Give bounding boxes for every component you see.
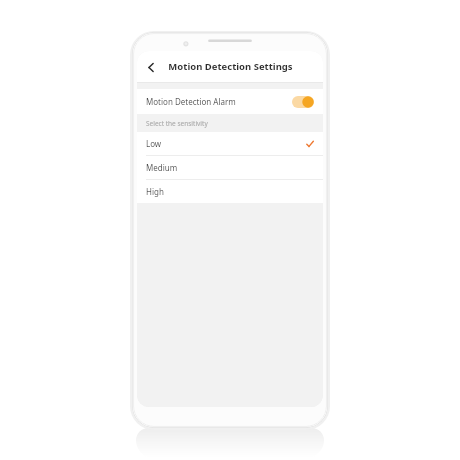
staticText: Motion Detection Alarm — [146, 96, 236, 107]
button[interactable]: High — [137, 180, 323, 203]
staticText: High — [146, 186, 164, 197]
button[interactable]: Back — [140, 56, 162, 78]
staticText: Medium — [146, 162, 178, 173]
button[interactable]: Motion Detection Alarm toggle — [292, 96, 314, 108]
button[interactable]: Low — [137, 132, 323, 155]
staticText: Select the sensitivity — [146, 119, 208, 128]
staticText: Motion Detection Settings — [168, 60, 293, 73]
button[interactable]: Motion Detection Alarm — [137, 89, 323, 114]
staticText: Low — [146, 138, 162, 149]
button[interactable]: Medium — [137, 156, 323, 179]
